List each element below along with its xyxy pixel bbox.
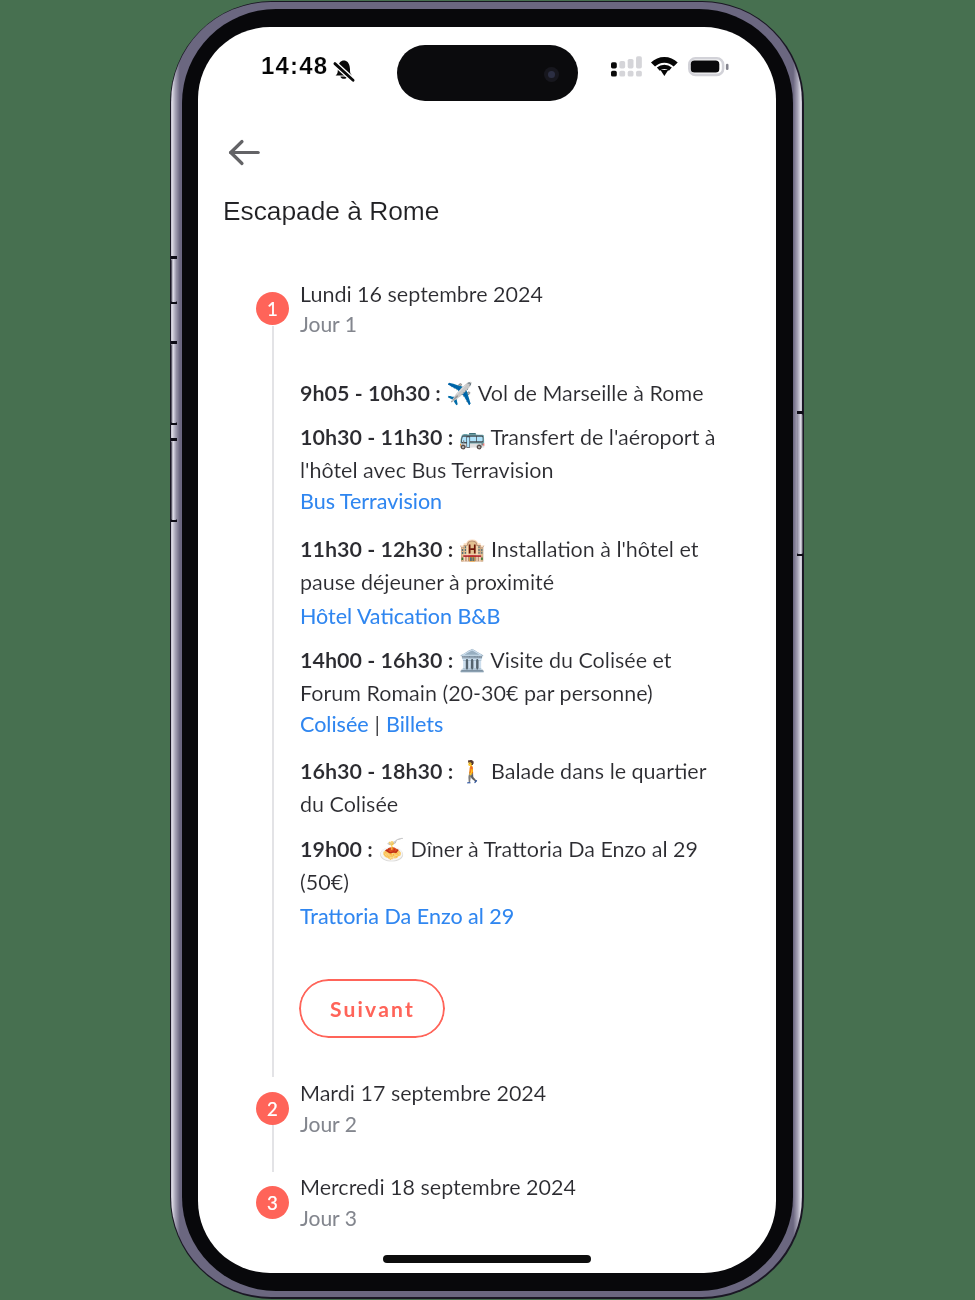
button[interactable]: Back <box>220 128 268 176</box>
button[interactable]: Billets <box>386 711 444 737</box>
staticText: 10h30 - 11h30 : 🚌 Transfert de l'aéropor… <box>300 424 730 483</box>
staticText: Jour 1 <box>300 311 357 336</box>
staticText: Suivant <box>330 996 415 1021</box>
button[interactable]: Hôtel Vatication B&B <box>300 603 501 629</box>
staticText: 1 <box>267 298 278 320</box>
button[interactable]: Colisée <box>300 711 369 737</box>
button[interactable]: 1 <box>256 292 289 325</box>
staticText: Lundi 16 septembre 2024 <box>300 281 543 307</box>
staticText: Mercredi 18 septembre 2024 <box>300 1174 576 1200</box>
staticText: Mardi 17 septembre 2024 <box>300 1080 547 1106</box>
staticText: 19h00 : 🍝 Dîner à Trattoria Da Enzo al 2… <box>300 836 730 895</box>
staticText: Jour 3 <box>300 1205 357 1230</box>
staticText: 9h05 - 10h30 : ✈️ Vol de Marseille à Rom… <box>300 380 730 406</box>
staticText: Escapade à Rome <box>223 196 440 225</box>
button[interactable]: 2 <box>256 1092 289 1125</box>
button[interactable]: Trattoria Da Enzo al 29 <box>300 903 515 929</box>
staticText: 11h30 - 12h30 : 🏨 Installation à l'hôtel… <box>300 536 730 595</box>
staticText: 16h30 - 18h30 : 🚶 Balade dans le quartie… <box>300 758 730 817</box>
button[interactable]: Suivant <box>299 979 445 1038</box>
staticText: 14h00 - 16h30 : 🏛️ Visite du Colisée et … <box>300 647 730 706</box>
staticText: | <box>369 711 386 737</box>
staticText: 14:48 <box>261 52 329 79</box>
button[interactable]: 3 <box>256 1186 289 1219</box>
staticText: 3 <box>267 1192 278 1214</box>
button[interactable]: Bus Terravision <box>300 488 443 514</box>
staticText: 2 <box>267 1098 278 1120</box>
staticText: Jour 2 <box>300 1111 357 1136</box>
